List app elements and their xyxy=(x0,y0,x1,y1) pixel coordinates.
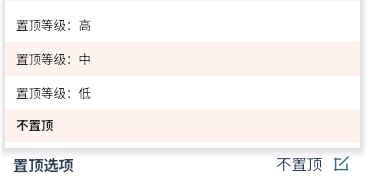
button[interactable]: 置顶等级：中 xyxy=(5,42,360,76)
staticText: 置顶等级：高 xyxy=(16,15,92,33)
staticText: 不置顶 xyxy=(16,115,54,133)
other: Edit xyxy=(334,157,350,173)
staticText: 置顶选项 xyxy=(13,153,74,175)
button[interactable]: 置顶选项 xyxy=(0,154,82,176)
button[interactable]: 置顶等级：低 xyxy=(5,76,360,109)
button[interactable]: 置顶等级：高 xyxy=(5,9,360,42)
staticText: 不置顶 xyxy=(276,152,323,174)
button[interactable]: 不置顶 xyxy=(5,109,360,142)
button[interactable]: 不置顶 xyxy=(276,154,350,176)
staticText: 置顶等级：低 xyxy=(16,83,92,101)
staticText: 置顶等级：中 xyxy=(16,49,92,67)
